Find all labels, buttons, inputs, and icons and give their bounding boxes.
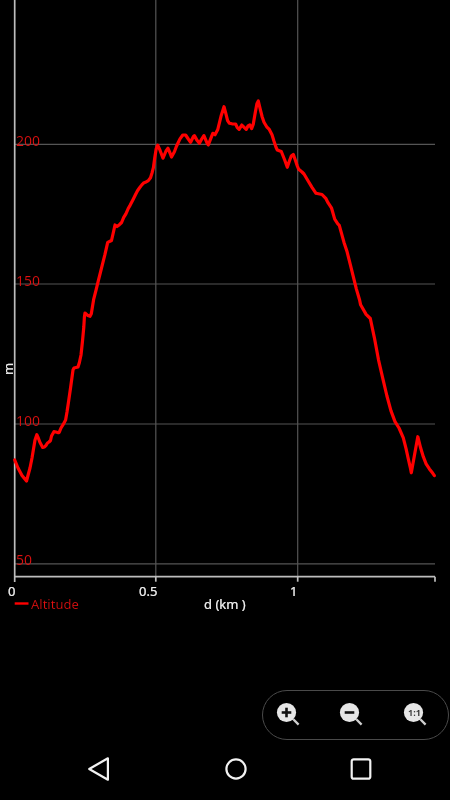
staticText: Altitude bbox=[31, 595, 79, 611]
staticText: 1:1 bbox=[408, 706, 421, 718]
button[interactable]: 1:1 bbox=[400, 699, 432, 731]
staticText: 100 bbox=[16, 411, 41, 427]
button[interactable] bbox=[338, 746, 384, 792]
button[interactable] bbox=[336, 699, 368, 731]
staticText: 200 bbox=[16, 131, 41, 147]
staticText: 0 bbox=[8, 582, 16, 597]
staticText: 150 bbox=[16, 271, 41, 287]
button[interactable] bbox=[273, 699, 305, 731]
staticText: 50 bbox=[16, 550, 33, 566]
button[interactable] bbox=[213, 746, 259, 792]
staticText: m bbox=[0, 362, 15, 375]
staticText: 0.5 bbox=[139, 582, 158, 597]
button[interactable] bbox=[78, 746, 124, 792]
staticText: d (km ) bbox=[204, 595, 246, 611]
staticText: 1 bbox=[290, 582, 298, 597]
